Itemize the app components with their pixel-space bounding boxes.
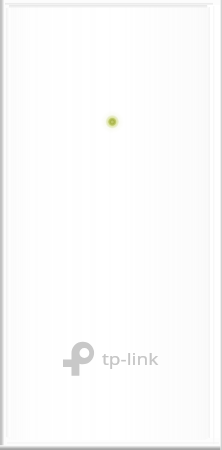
staticText: tp-link [102,348,159,370]
button[interactable]: TP-Link wall plug device [0,0,222,450]
